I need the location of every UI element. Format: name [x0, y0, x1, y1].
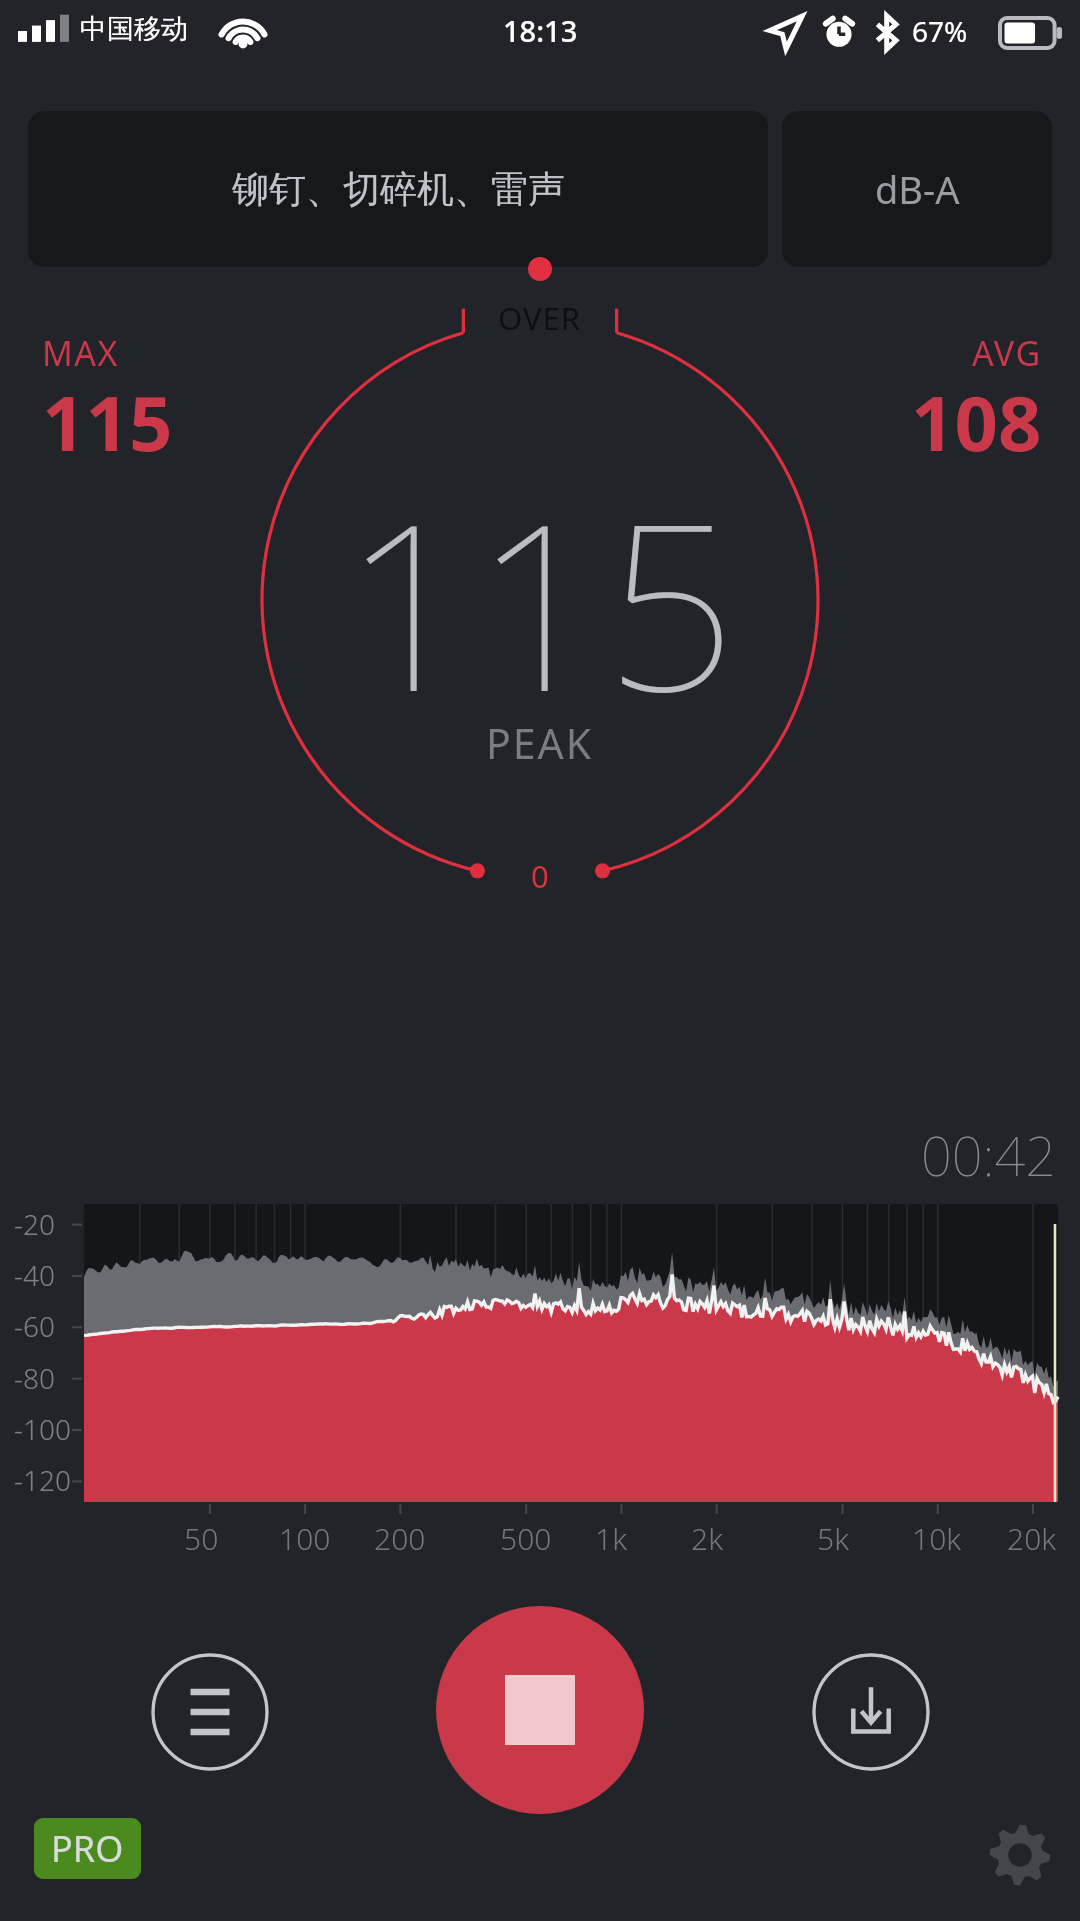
- staticText: 500: [500, 1518, 552, 1559]
- staticText: 100: [279, 1518, 331, 1559]
- staticText: 5k: [817, 1518, 849, 1559]
- staticText: 中国移动: [80, 12, 188, 46]
- staticText: PEAK: [486, 715, 594, 771]
- staticText: 00:42: [0, 1118, 1056, 1192]
- staticText: -60: [14, 1307, 55, 1345]
- button[interactable]: Menu: [151, 1653, 269, 1771]
- button[interactable]: dB-A: [782, 111, 1052, 267]
- staticText: 1k: [595, 1518, 627, 1559]
- staticText: 115: [343, 445, 737, 758]
- staticText: 铆钉、切碎机、雷声: [232, 166, 565, 213]
- staticText: -20: [14, 1205, 55, 1243]
- staticText: MAX: [42, 330, 119, 376]
- staticText: 67%: [912, 12, 968, 50]
- staticText: 200: [374, 1518, 426, 1559]
- staticText: dB-A: [875, 163, 960, 215]
- staticText: AVG: [972, 330, 1042, 376]
- staticText: OVER: [498, 297, 582, 339]
- staticText: -40: [14, 1256, 55, 1294]
- button[interactable]: Settings: [982, 1817, 1058, 1893]
- button[interactable]: Stop recording: [436, 1606, 644, 1814]
- staticText: 50: [184, 1518, 219, 1559]
- staticText: -80: [14, 1359, 55, 1397]
- staticText: 108: [911, 370, 1042, 474]
- staticText: 20k: [1007, 1518, 1057, 1559]
- button[interactable]: Save recording: [812, 1653, 930, 1771]
- staticText: 115: [42, 370, 173, 474]
- staticText: 0: [531, 855, 549, 897]
- staticText: 10k: [912, 1518, 962, 1559]
- staticText: PRO: [51, 1824, 124, 1873]
- staticText: -120: [14, 1461, 71, 1499]
- staticText: -100: [14, 1410, 71, 1448]
- staticText: 18:13: [503, 11, 578, 50]
- button[interactable]: 铆钉、切碎机、雷声: [28, 111, 768, 267]
- staticText: 2k: [691, 1518, 723, 1559]
- button[interactable]: PRO: [34, 1818, 141, 1879]
